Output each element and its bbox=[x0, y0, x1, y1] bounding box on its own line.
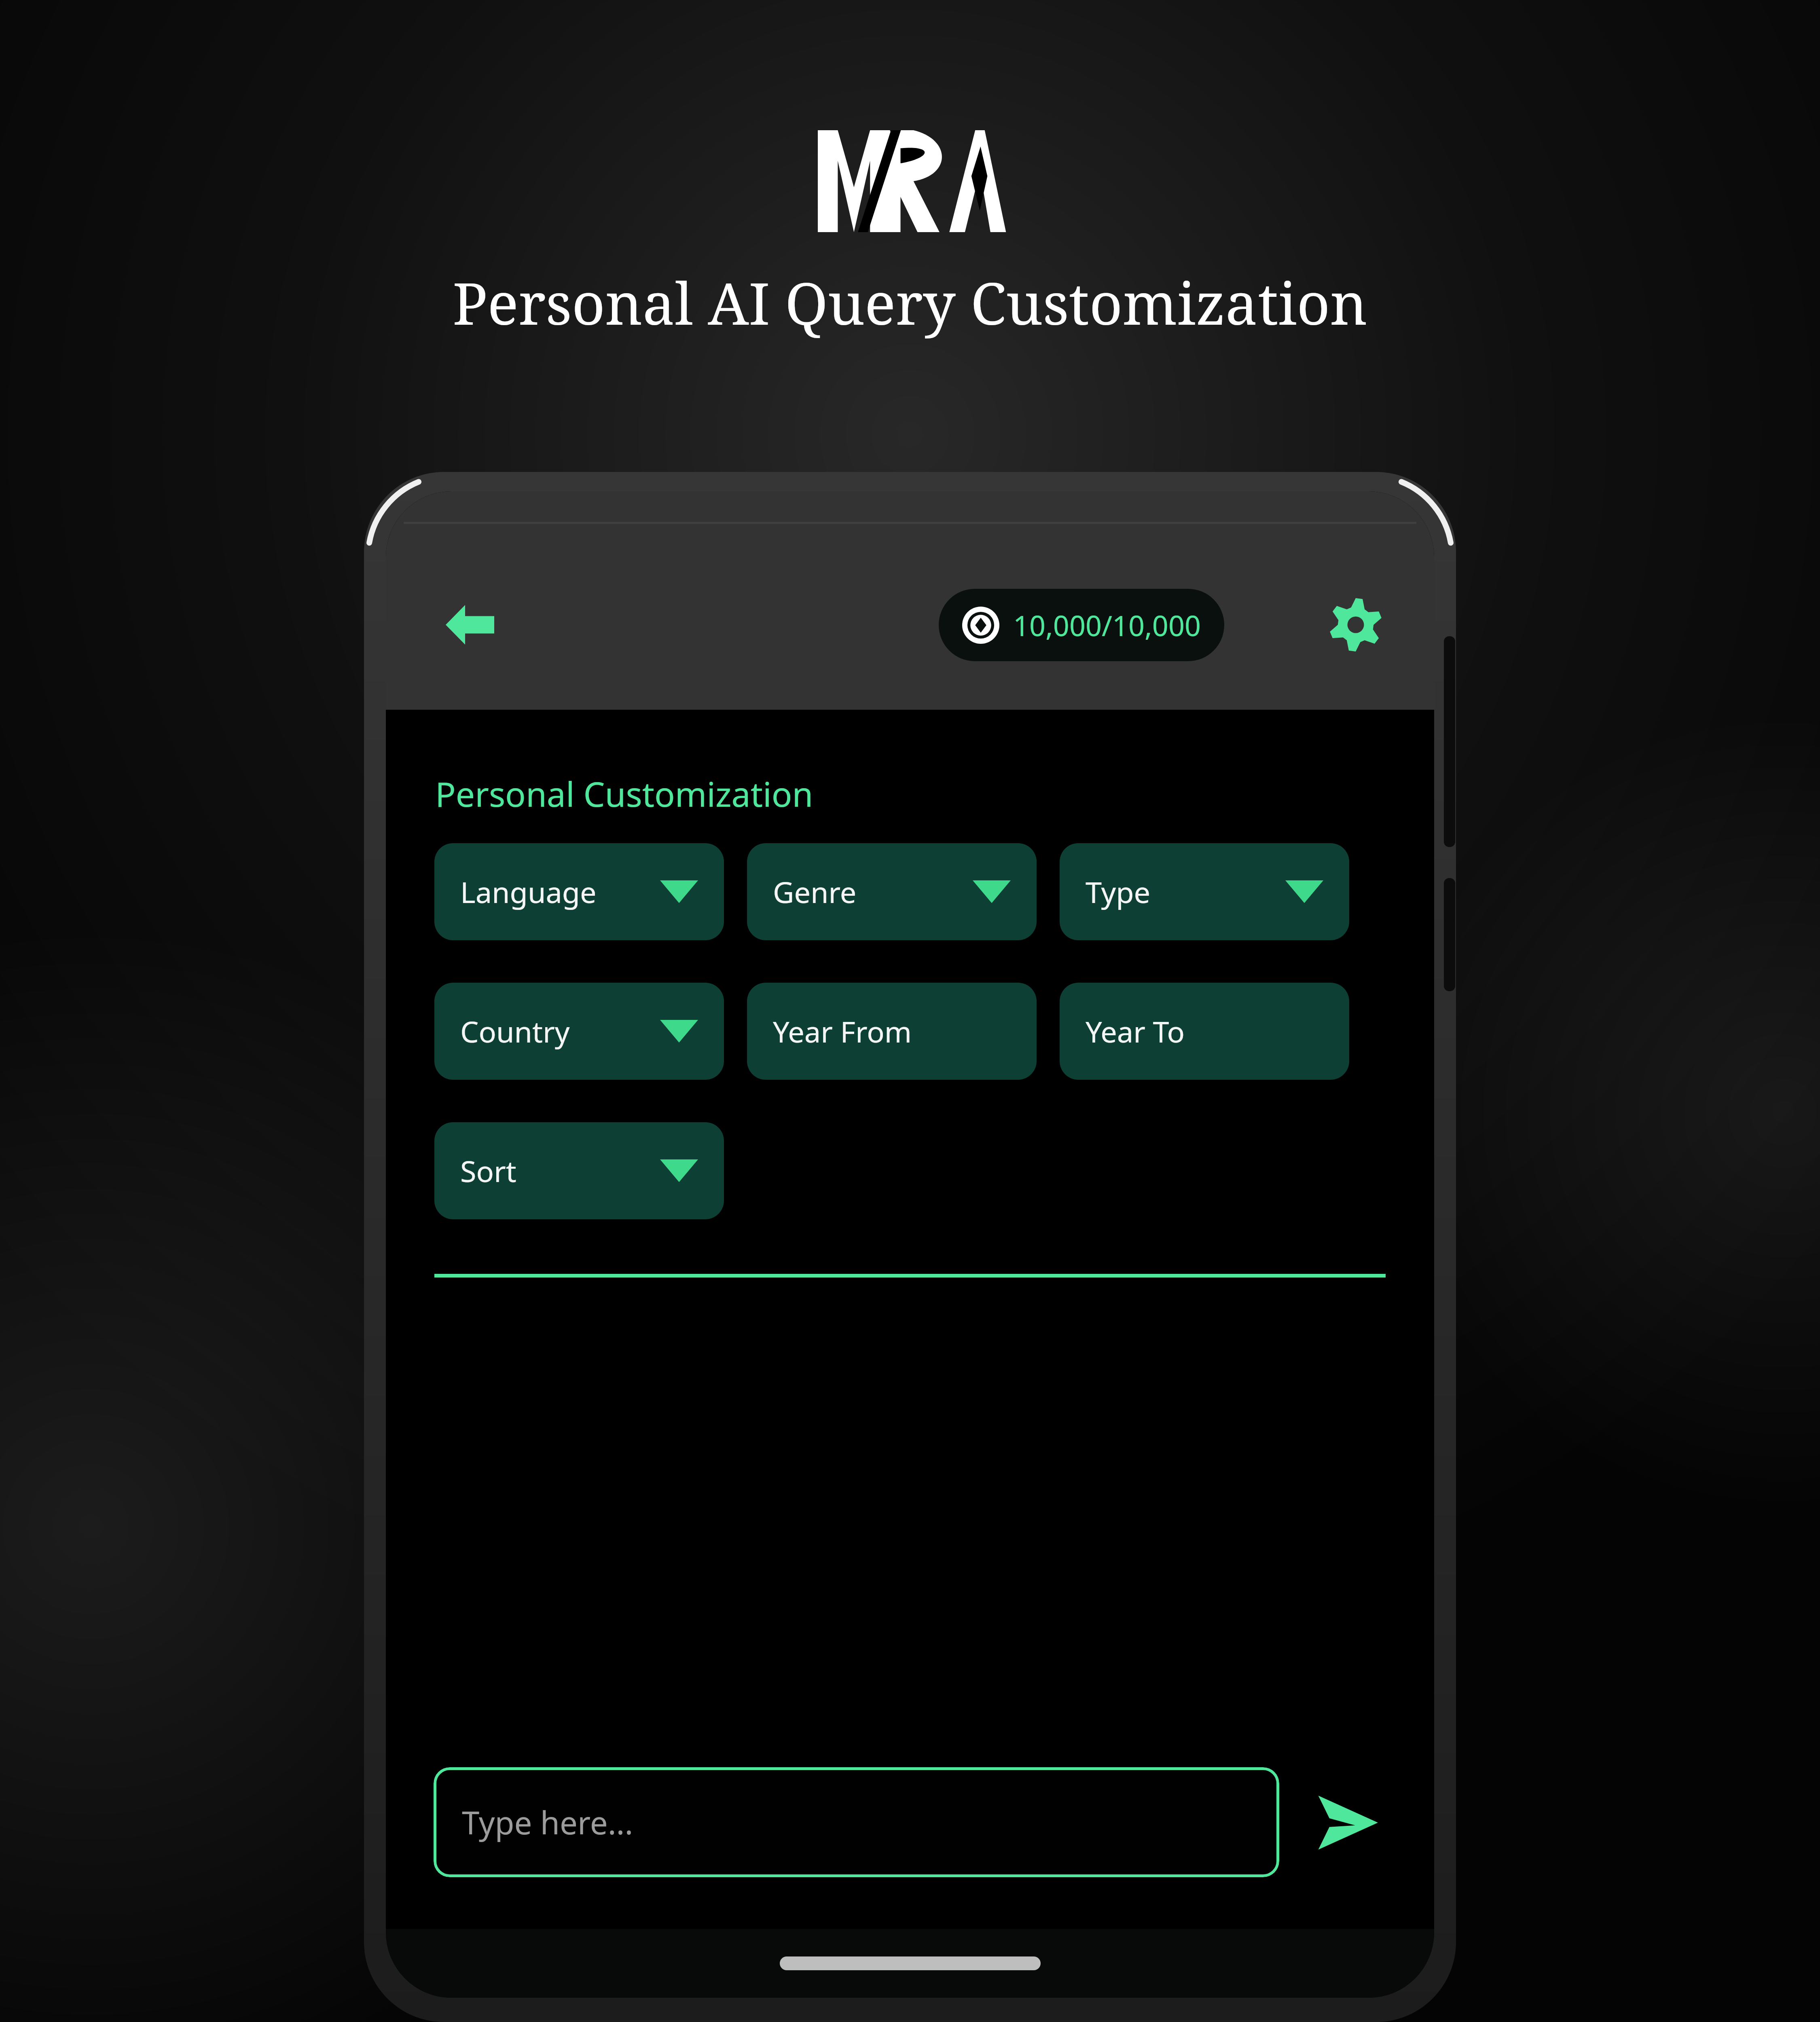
button[interactable]: Back bbox=[434, 588, 506, 661]
button[interactable]: Country bbox=[434, 983, 724, 1080]
staticText: Type bbox=[1086, 872, 1151, 912]
staticText: Year To bbox=[1086, 1011, 1185, 1051]
staticText: Type here... bbox=[462, 1801, 633, 1844]
staticText: Sort bbox=[460, 1151, 516, 1191]
staticText: Personal AI Query Customization bbox=[453, 263, 1367, 342]
staticText: Country bbox=[460, 1011, 570, 1051]
button[interactable]: Type here... bbox=[434, 1767, 1279, 1877]
button[interactable]: 10,000/10,000 bbox=[939, 589, 1224, 661]
button[interactable]: Year From bbox=[747, 983, 1037, 1080]
button[interactable]: Genre bbox=[747, 843, 1037, 940]
button[interactable]: Settings bbox=[1319, 588, 1392, 661]
staticText: 10,000/10,000 bbox=[1013, 606, 1201, 644]
staticText: Year From bbox=[773, 1011, 912, 1051]
staticText: Personal Customization bbox=[435, 770, 813, 816]
button[interactable]: Language bbox=[434, 843, 724, 940]
button[interactable]: Sort bbox=[434, 1122, 724, 1219]
button[interactable]: Year To bbox=[1060, 983, 1349, 1080]
staticText: Language bbox=[460, 872, 597, 912]
button[interactable]: Type bbox=[1060, 843, 1349, 940]
staticText: Genre bbox=[773, 872, 857, 912]
button[interactable]: Send bbox=[1304, 1779, 1390, 1866]
